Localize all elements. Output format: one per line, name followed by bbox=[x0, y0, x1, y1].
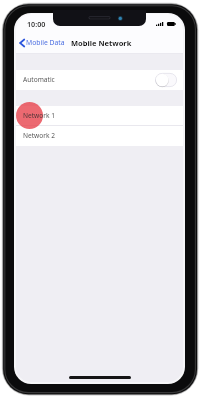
button[interactable]: Automatic bbox=[16, 70, 183, 90]
staticText: Network 2 bbox=[23, 131, 56, 140]
button[interactable]: Mobile Data bbox=[16, 36, 69, 49]
staticText: 10:00 bbox=[27, 19, 46, 29]
staticText: Automatic bbox=[23, 75, 55, 84]
staticText: Network 1 bbox=[23, 111, 56, 120]
staticText: Mobile Network bbox=[71, 38, 132, 48]
button[interactable] bbox=[16, 126, 183, 146]
button[interactable] bbox=[16, 106, 183, 126]
button[interactable]: Automatic network selection toggle bbox=[155, 73, 177, 87]
staticText: Mobile Data bbox=[26, 38, 65, 47]
